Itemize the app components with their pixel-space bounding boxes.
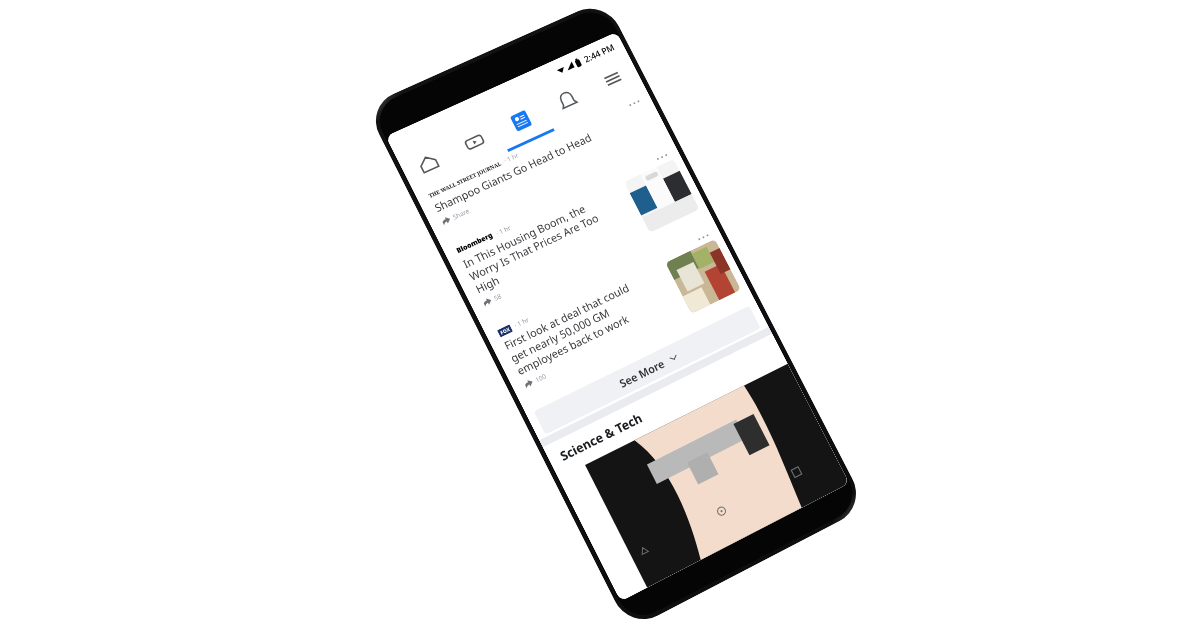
button[interactable]: Menu: [582, 52, 646, 110]
button[interactable]: See More: [533, 305, 761, 435]
button[interactable]: Notifications: [536, 73, 601, 131]
staticText: First look at deal that could get nearly…: [501, 277, 651, 378]
button[interactable]: Recent apps: [753, 441, 840, 503]
button[interactable]: Home: [677, 480, 765, 542]
button[interactable]: News: [490, 94, 555, 152]
staticText: 58: [492, 291, 503, 303]
staticText: Shampoo Giants Go Head to Head: [432, 130, 594, 215]
button[interactable]: Back: [599, 519, 688, 582]
staticText: Science & Tech: [557, 409, 645, 465]
button[interactable]: Bloomberg: [443, 142, 715, 333]
staticText: THE WALL STREET JOURNAL: [427, 160, 502, 199]
staticText: In This Housing Boom, the Worry Is That …: [460, 197, 610, 296]
button[interactable]: Watch: [443, 115, 508, 174]
button[interactable]: More options: [623, 94, 646, 113]
staticText: Share: [451, 206, 471, 221]
button[interactable]: More options: [651, 147, 673, 167]
button[interactable]: Home: [396, 136, 462, 195]
staticText: · 1 hr: [512, 315, 531, 330]
staticText: See More: [617, 356, 667, 391]
button[interactable]: FOX: [485, 222, 755, 412]
staticText: Bloomberg: [455, 230, 495, 256]
staticText: FOX: [499, 326, 512, 337]
staticText: 2:44 PM: [582, 41, 616, 64]
staticText: 100: [534, 371, 548, 384]
button[interactable]: More options: [692, 227, 715, 247]
staticText: · 1 hr: [494, 223, 513, 238]
button[interactable]: THE WALL STREET JOURNAL: [415, 89, 674, 250]
staticText: · 1 hr: [502, 151, 520, 165]
